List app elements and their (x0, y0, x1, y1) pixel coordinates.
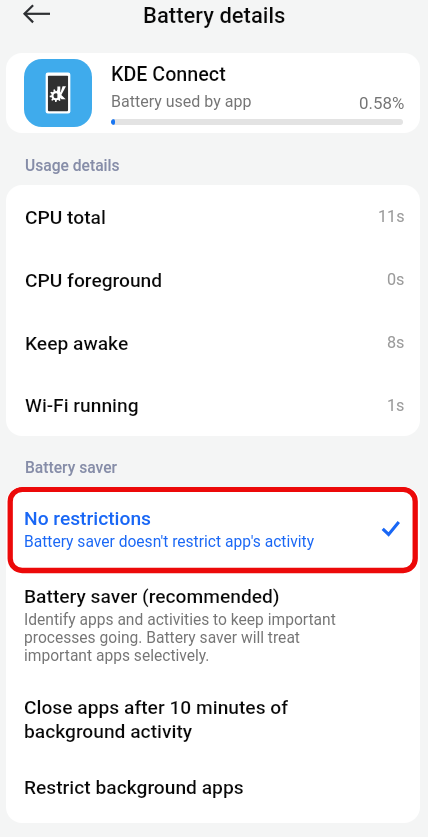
staticText: KDE Connect (111, 62, 226, 86)
staticText: Restrict background apps (24, 775, 244, 799)
staticText: Usage details (25, 157, 120, 175)
button[interactable]: KDE Connect (6, 53, 420, 133)
button[interactable]: No restrictions (6, 487, 420, 573)
staticText: 1s (387, 396, 405, 415)
staticText: Battery details (143, 2, 286, 28)
staticText: Battery saver doesn't restrict app's act… (24, 533, 315, 551)
button[interactable]: Wi-Fi running (6, 374, 420, 436)
staticText: CPU total (25, 205, 106, 229)
staticText: CPU foreground (25, 268, 163, 292)
staticText: Wi-Fi running (25, 393, 139, 417)
button[interactable]: CPU foreground (6, 248, 420, 311)
staticText: 11s (378, 207, 405, 226)
staticText: Battery saver (recommended) (24, 584, 280, 608)
button[interactable]: CPU total (6, 185, 420, 248)
staticText: 0.58% (359, 93, 405, 113)
staticText: Battery saver (25, 459, 117, 477)
staticText: Identify apps and activities to keep imp… (24, 611, 344, 665)
staticText: Battery used by app (111, 92, 252, 111)
staticText: Keep awake (25, 331, 129, 355)
staticText: 0s (387, 270, 405, 289)
button[interactable]: Back (15, 0, 59, 30)
button[interactable]: Keep awake (6, 311, 420, 374)
staticText: 8s (387, 333, 405, 352)
staticText: Close apps after 10 minutes of backgroun… (24, 695, 314, 743)
staticText: No restrictions (24, 506, 152, 530)
